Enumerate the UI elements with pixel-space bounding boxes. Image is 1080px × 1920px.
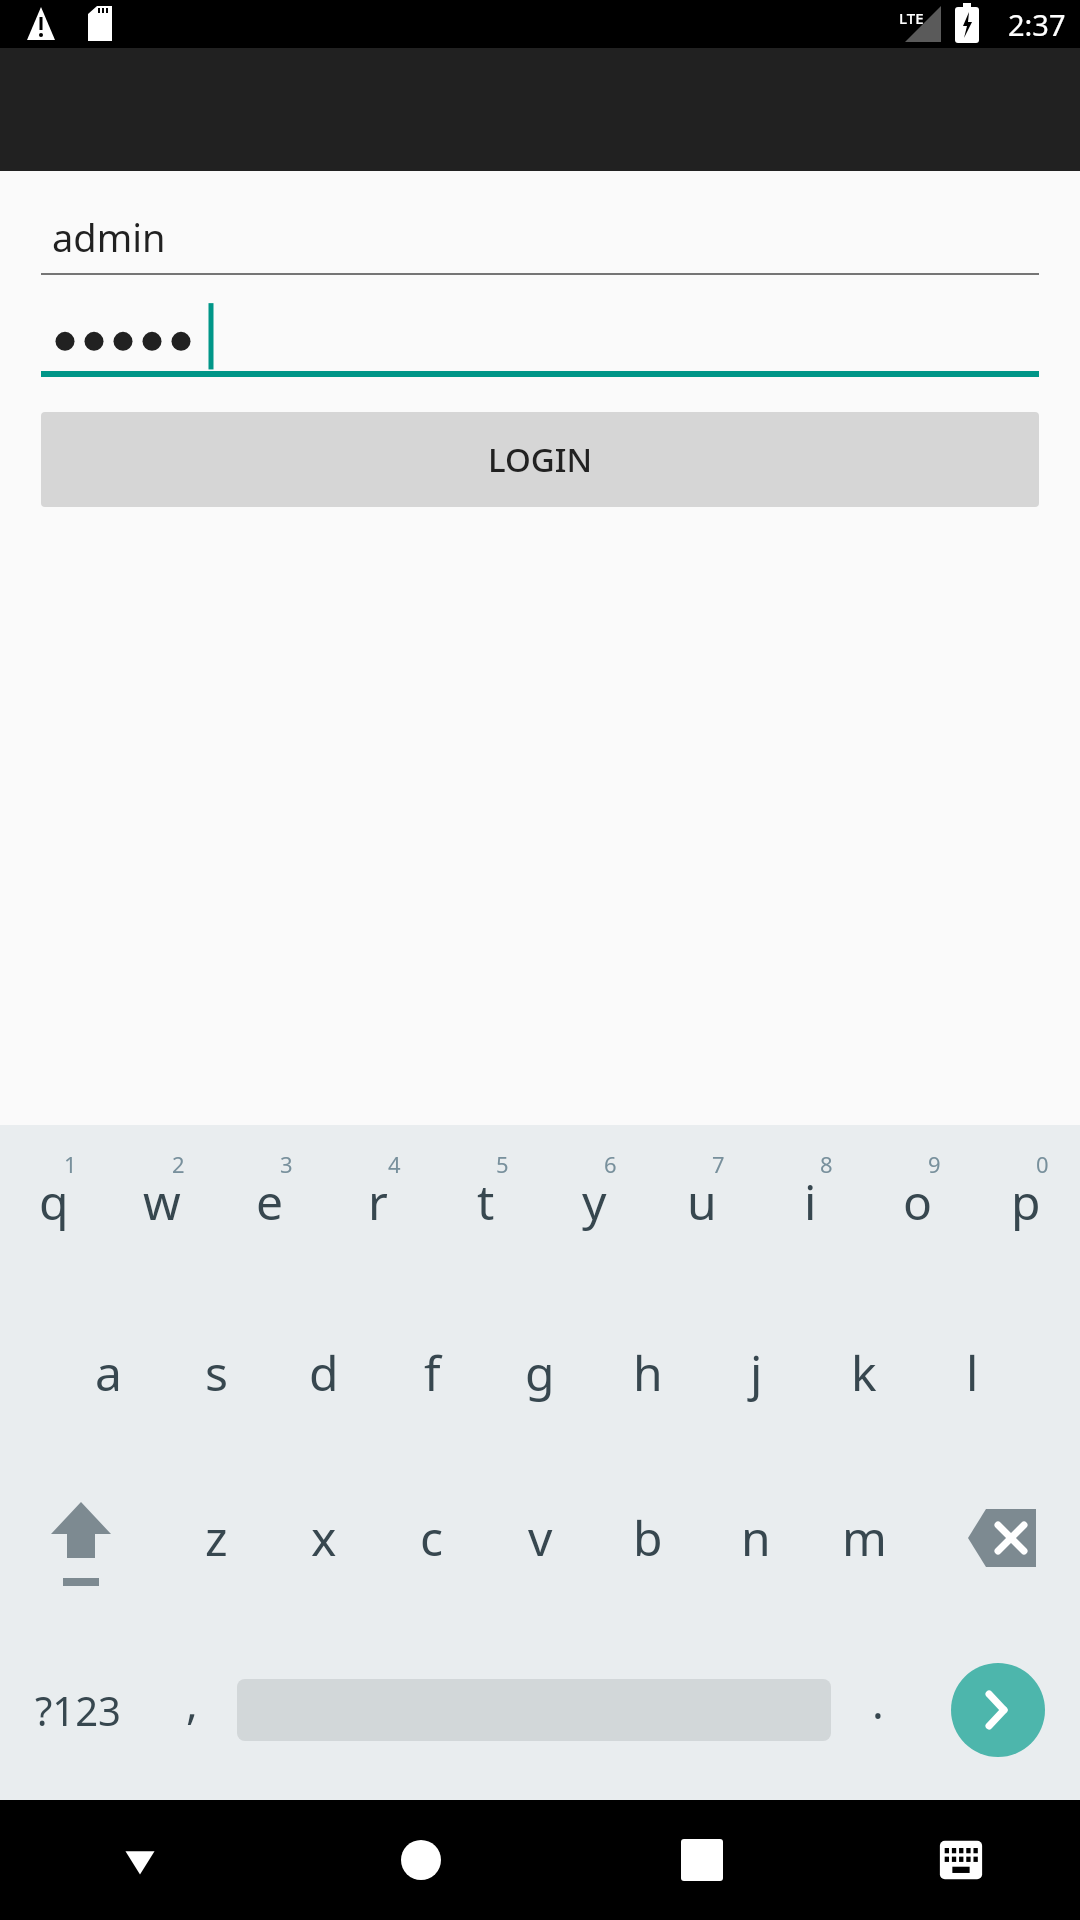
button[interactable]: 2 [108, 1125, 216, 1290]
button[interactable]: admin [41, 211, 1039, 275]
button[interactable]: 5 [432, 1125, 540, 1290]
button[interactable]: Enter [916, 1620, 1080, 1800]
staticText: m [842, 1505, 887, 1570]
staticText: 0 [1036, 1149, 1049, 1179]
button[interactable]: Backspace [918, 1455, 1080, 1620]
staticText: p [1011, 1169, 1041, 1234]
staticText: s [205, 1340, 228, 1405]
staticText: v [528, 1505, 553, 1570]
staticText: o [903, 1169, 933, 1234]
button[interactable]: c [378, 1455, 486, 1620]
button[interactable]: 6 [540, 1125, 648, 1290]
staticText: 1 [64, 1149, 77, 1179]
button[interactable]: d [270, 1290, 378, 1455]
staticText: 9 [928, 1149, 941, 1179]
staticText: d [309, 1340, 339, 1405]
staticText: LTE [899, 8, 924, 28]
staticText: , [186, 1672, 198, 1732]
button[interactable]: Switch keyboard [842, 1800, 1080, 1920]
staticText: ?123 [35, 1683, 121, 1737]
staticText: 5 [496, 1149, 509, 1179]
staticText: n [741, 1505, 771, 1570]
button[interactable] [228, 1620, 840, 1800]
staticText: 4 [388, 1149, 401, 1179]
button[interactable]: 0 [972, 1125, 1080, 1290]
button[interactable]: . [840, 1620, 916, 1800]
staticText: admin [52, 211, 166, 263]
button[interactable]: ?123 [0, 1620, 155, 1800]
staticText: z [205, 1505, 228, 1570]
staticText: f [424, 1340, 441, 1405]
staticText: w [143, 1169, 181, 1234]
staticText: a [95, 1340, 122, 1405]
button[interactable]: Hide keyboard [0, 1800, 280, 1920]
button[interactable]: 1 [0, 1125, 108, 1290]
staticText: 6 [604, 1149, 617, 1179]
staticText: q [39, 1169, 69, 1234]
button[interactable] [41, 293, 1039, 377]
staticText: y [582, 1169, 607, 1234]
staticText: 7 [712, 1149, 725, 1179]
staticText: . [872, 1672, 884, 1732]
button[interactable]: z [162, 1455, 270, 1620]
button[interactable]: Shift [0, 1455, 162, 1620]
button[interactable]: h [594, 1290, 702, 1455]
staticText: 3 [280, 1149, 293, 1179]
staticText: LOGIN [488, 437, 593, 482]
staticText: g [525, 1340, 555, 1405]
button[interactable]: 4 [324, 1125, 432, 1290]
button[interactable]: Home [280, 1800, 561, 1920]
button[interactable]: 8 [756, 1125, 864, 1290]
button[interactable]: l [918, 1290, 1026, 1455]
button[interactable]: b [594, 1455, 702, 1620]
button[interactable]: 3 [216, 1125, 324, 1290]
button[interactable]: a [54, 1290, 162, 1455]
staticText: 2 [172, 1149, 185, 1179]
staticText: c [420, 1505, 444, 1570]
staticText: e [256, 1169, 284, 1234]
staticText: u [687, 1169, 717, 1234]
staticText: b [633, 1505, 663, 1570]
button[interactable]: Recents [561, 1800, 842, 1920]
button[interactable]: j [702, 1290, 810, 1455]
button[interactable]: v [486, 1455, 594, 1620]
staticText: i [804, 1169, 817, 1234]
staticText: t [477, 1169, 495, 1234]
staticText: j [750, 1340, 763, 1405]
button[interactable]: m [810, 1455, 918, 1620]
staticText: l [966, 1340, 979, 1405]
staticText: 2:37 [1008, 5, 1066, 44]
button[interactable]: s [162, 1290, 270, 1455]
button[interactable]: , [155, 1620, 228, 1800]
staticText: x [311, 1505, 337, 1570]
button[interactable]: g [486, 1290, 594, 1455]
button[interactable]: n [702, 1455, 810, 1620]
button[interactable]: LOGIN [41, 412, 1039, 507]
staticText: k [851, 1340, 877, 1405]
button[interactable]: f [378, 1290, 486, 1455]
staticText: r [368, 1169, 388, 1234]
staticText: h [633, 1340, 663, 1405]
button[interactable]: 9 [864, 1125, 972, 1290]
button[interactable]: x [270, 1455, 378, 1620]
button[interactable]: k [810, 1290, 918, 1455]
staticText: 8 [820, 1149, 833, 1179]
button[interactable]: 7 [648, 1125, 756, 1290]
